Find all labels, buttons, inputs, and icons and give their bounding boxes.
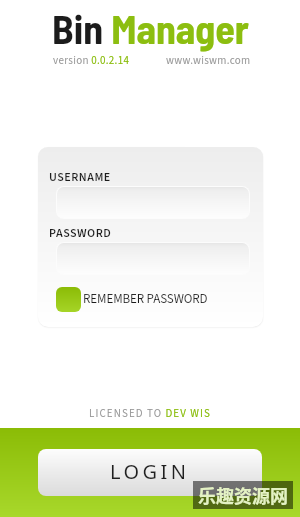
- button[interactable]: [56, 186, 250, 219]
- staticText: Bin Manager: [52, 4, 249, 52]
- staticText: 乐趣资源网: [198, 482, 288, 508]
- button[interactable]: REMEMBER PASSWORD: [56, 287, 208, 312]
- button[interactable]: [56, 242, 250, 275]
- button[interactable]: LOGIN: [38, 449, 262, 496]
- staticText: USERNAME: [49, 169, 111, 186]
- staticText: version 0.0.2.14: [53, 53, 130, 69]
- staticText: PASSWORD: [49, 225, 112, 242]
- staticText: LOGIN: [110, 458, 190, 485]
- staticText: www.wiswm.com: [166, 53, 251, 69]
- staticText: REMEMBER PASSWORD: [83, 290, 208, 309]
- staticText: LICENSED TO DEV WIS: [89, 406, 211, 422]
